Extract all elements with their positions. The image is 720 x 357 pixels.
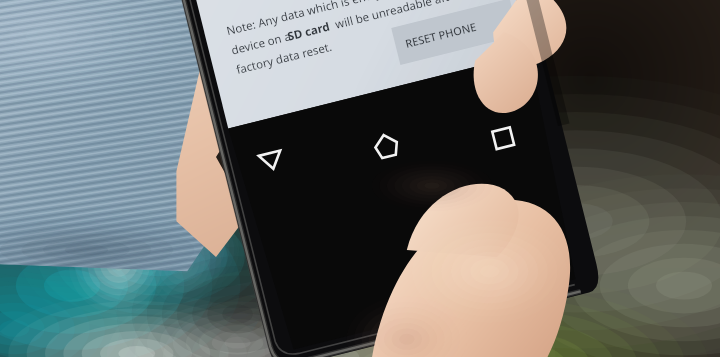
- button[interactable]: Photo of hand holding phone on factory r…: [0, 0, 720, 357]
